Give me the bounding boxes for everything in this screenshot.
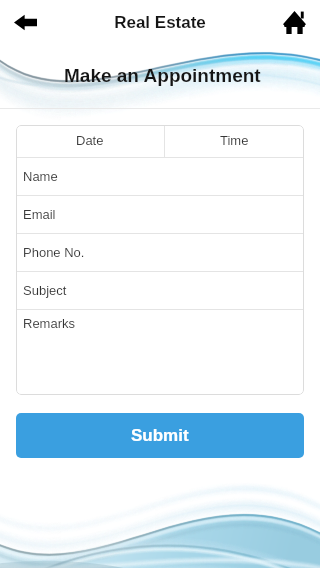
staticText: Email <box>23 207 56 222</box>
button[interactable]: Back <box>8 5 42 39</box>
button[interactable]: Phone No. <box>16 234 304 271</box>
button[interactable]: Submit <box>16 413 304 458</box>
staticText: Phone No. <box>23 245 85 260</box>
staticText: Subject <box>23 283 67 298</box>
staticText: Remarks <box>23 316 76 331</box>
staticText: Time <box>220 133 249 148</box>
button[interactable]: Date <box>16 125 164 157</box>
staticText: Real Estate <box>114 13 206 32</box>
staticText: Date <box>76 133 104 148</box>
button[interactable]: Name <box>16 158 304 195</box>
button[interactable]: Remarks <box>16 310 304 395</box>
staticText: Submit <box>131 426 189 445</box>
staticText: Make an Appointment <box>64 65 261 86</box>
button[interactable]: Home <box>277 5 311 39</box>
staticText: Name <box>23 169 58 184</box>
button[interactable]: Email <box>16 196 304 233</box>
button[interactable]: Time <box>165 125 304 157</box>
button[interactable]: Subject <box>16 272 304 309</box>
